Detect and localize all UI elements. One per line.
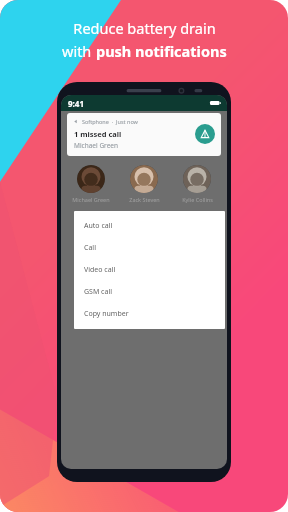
staticText: Kylie Collins <box>182 196 213 203</box>
staticText: Copy number <box>84 309 129 319</box>
staticText: 9:41 <box>68 98 84 109</box>
button[interactable]: Auto call <box>74 215 225 237</box>
staticText: Michael Green <box>72 196 110 203</box>
staticText: GSM call <box>84 287 113 297</box>
staticText: Softphone · Just now <box>82 118 138 125</box>
button[interactable]: Call <box>74 237 225 259</box>
staticText: Reduce battery drain <box>73 18 216 38</box>
staticText: Michael Green <box>74 141 119 150</box>
staticText: Auto call <box>84 221 113 231</box>
staticText: 1 missed call <box>74 129 122 139</box>
staticText: push notifications <box>96 41 227 61</box>
button[interactable]: Kylie Collins <box>173 165 221 203</box>
button[interactable]: Softphone · Just now <box>67 113 221 156</box>
staticText: Call <box>84 243 96 253</box>
staticText: with <box>62 41 96 61</box>
staticText: Zack Steven <box>129 196 160 203</box>
other: Softphone app <box>195 124 215 144</box>
staticText: Video call <box>84 265 116 275</box>
button[interactable]: Copy number <box>74 303 225 325</box>
button[interactable]: Video call <box>74 259 225 281</box>
button[interactable]: GSM call <box>74 281 225 303</box>
button[interactable]: Michael Green <box>67 165 115 203</box>
button[interactable]: Zack Steven <box>120 165 168 203</box>
